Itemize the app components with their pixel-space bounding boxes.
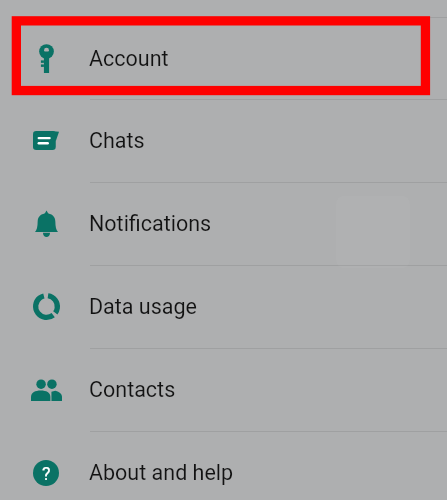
button[interactable]: Account (0, 17, 447, 100)
button[interactable]: Contacts (0, 348, 447, 431)
button[interactable]: Chats (0, 99, 447, 182)
staticText: Chats (89, 128, 145, 153)
other: Account (3, 44, 89, 73)
staticText: Contacts (89, 377, 176, 402)
button[interactable]: Data usage (0, 265, 447, 348)
button[interactable]: Notifications (0, 182, 447, 265)
staticText: Account (89, 46, 169, 71)
other: About and help (3, 460, 89, 486)
staticText: ? (42, 463, 51, 484)
staticText: About and help (89, 460, 234, 485)
staticText: Notifications (89, 211, 212, 236)
other: Chats (3, 131, 89, 150)
button[interactable]: About and help (0, 431, 447, 500)
other: Notifications (3, 211, 89, 236)
other: Data usage (3, 293, 89, 320)
staticText: Data usage (89, 294, 197, 319)
other: Contacts (3, 379, 89, 401)
